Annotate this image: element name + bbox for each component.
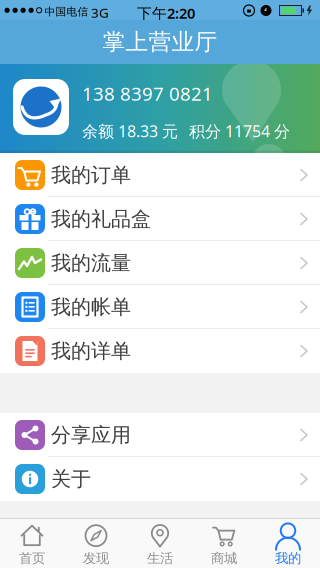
staticText: 首页 bbox=[19, 550, 45, 567]
staticText: 商城 bbox=[211, 550, 237, 567]
staticText: 中国电信 bbox=[44, 5, 88, 18]
staticText: 生活 bbox=[147, 550, 173, 567]
staticText: 我的帐单 bbox=[51, 295, 131, 319]
button[interactable]: 分享应用 bbox=[0, 413, 320, 457]
staticText: 余额 18.33 元 bbox=[82, 120, 178, 142]
button[interactable]: 首页 bbox=[0, 519, 64, 568]
button[interactable]: 我的礼品盒 bbox=[0, 197, 320, 241]
button[interactable]: 关于 bbox=[0, 457, 320, 501]
staticText: 我的详单 bbox=[51, 339, 131, 363]
staticText: 我的 bbox=[275, 550, 301, 567]
button[interactable]: 我的流量 bbox=[0, 241, 320, 285]
staticText: 积分 11754 分 bbox=[189, 120, 290, 142]
staticText: 掌上营业厅 bbox=[102, 28, 217, 56]
staticText: 我的礼品盒 bbox=[51, 207, 151, 231]
staticText: 我的订单 bbox=[51, 163, 131, 187]
staticText: 下午2:20 bbox=[137, 3, 195, 23]
staticText: 我的流量 bbox=[51, 251, 131, 275]
button[interactable]: 商城 bbox=[192, 519, 256, 568]
staticText: 3G bbox=[91, 4, 109, 21]
staticText: 关于 bbox=[51, 467, 91, 491]
staticText: 138 8397 0821 bbox=[82, 81, 213, 106]
button[interactable]: 我的 bbox=[256, 519, 320, 568]
button[interactable]: 发现 bbox=[64, 519, 128, 568]
staticText: 发现 bbox=[83, 550, 109, 567]
button[interactable]: 生活 bbox=[128, 519, 192, 568]
button[interactable]: 我的订单 bbox=[0, 153, 320, 197]
button[interactable]: 我的帐单 bbox=[0, 285, 320, 329]
staticText: 分享应用 bbox=[51, 423, 131, 447]
button[interactable]: 我的详单 bbox=[0, 329, 320, 373]
